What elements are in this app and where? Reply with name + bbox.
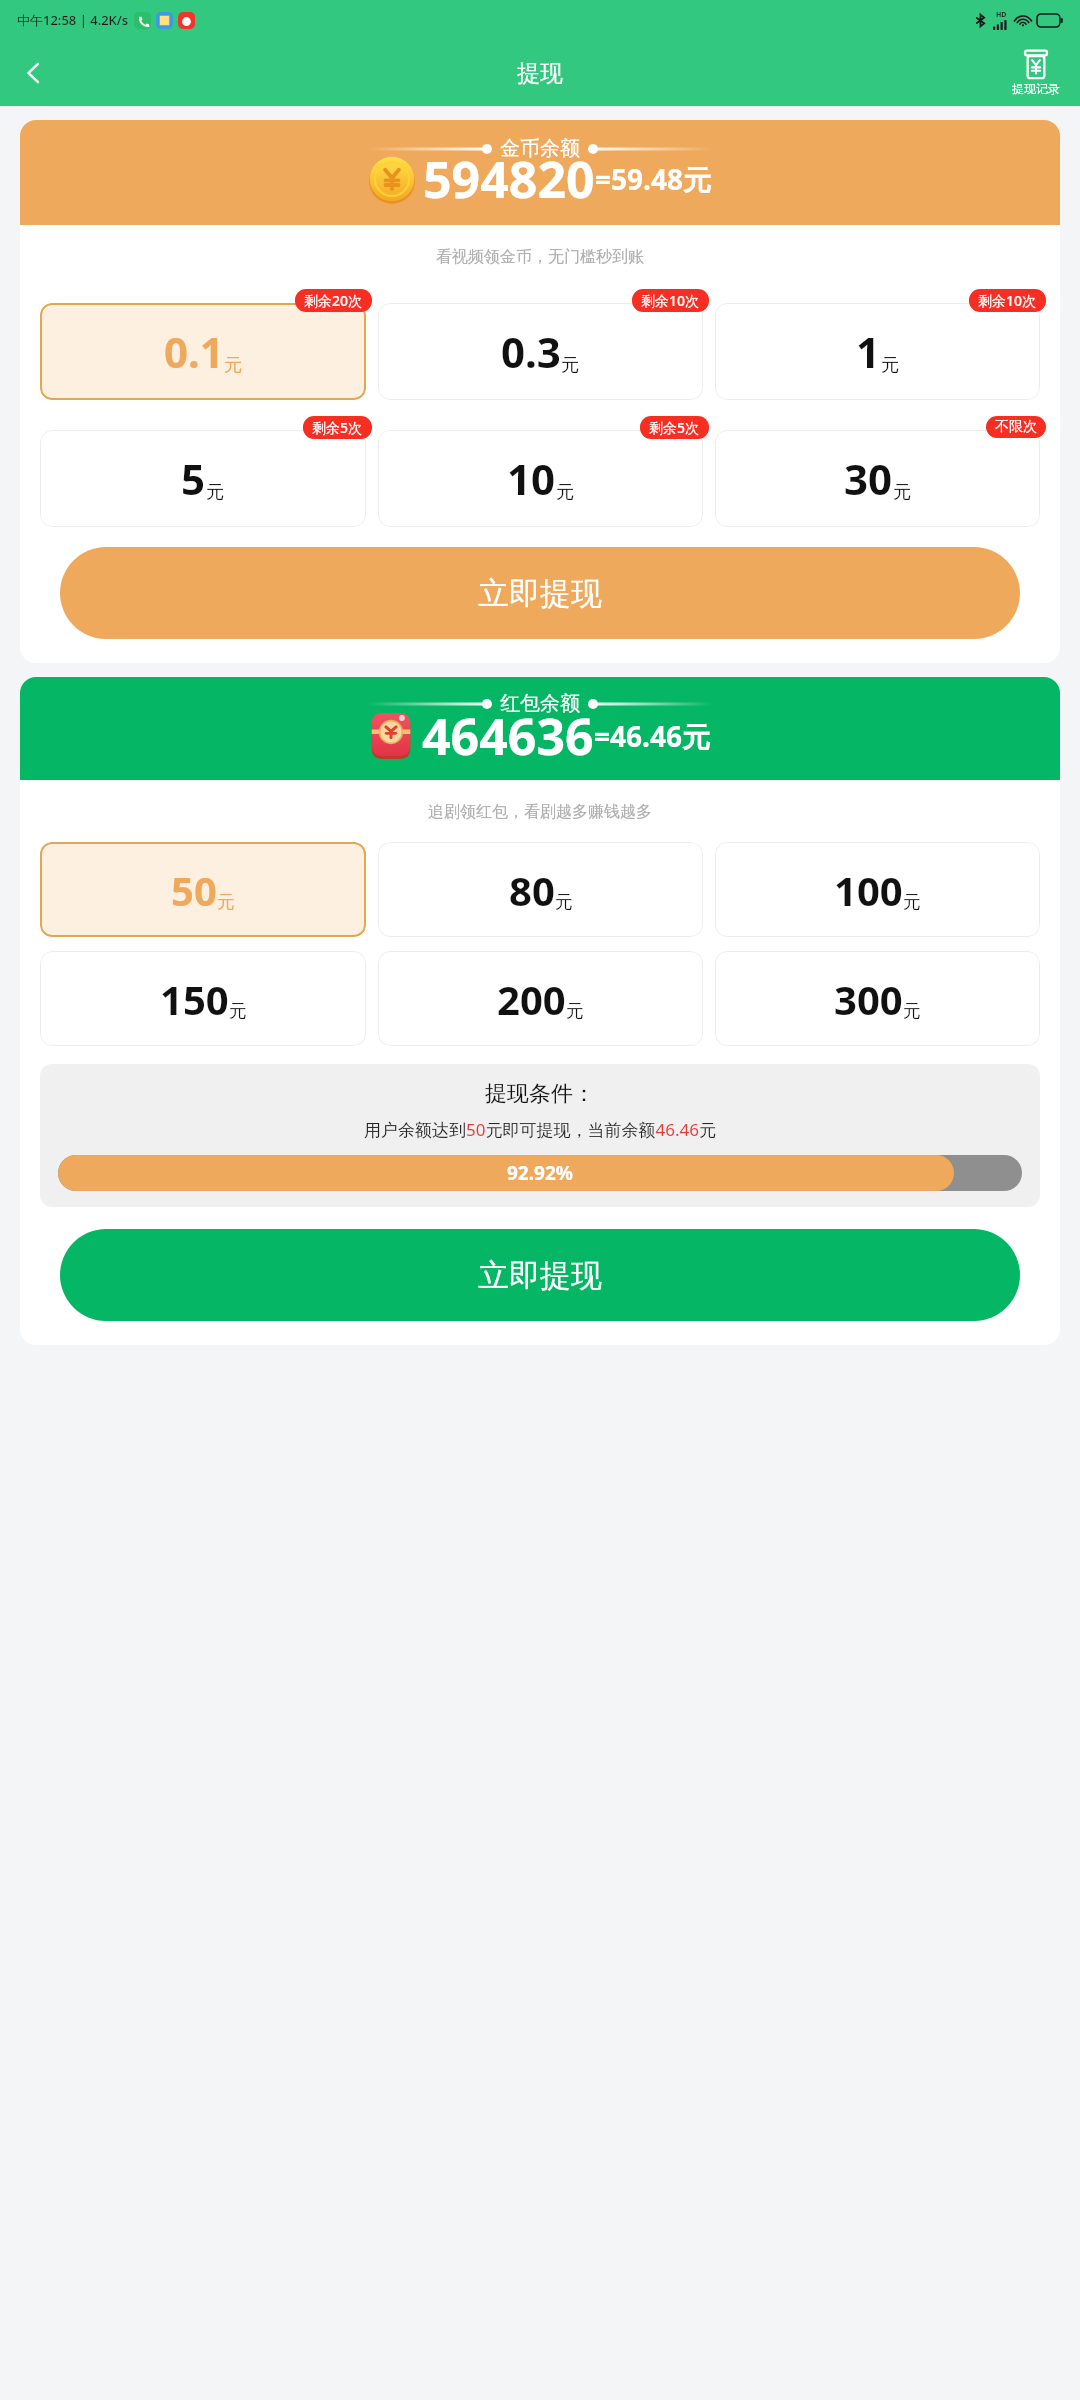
staticText: 中午12:58 | 4.2K/s	[17, 11, 129, 29]
staticText: 1	[856, 323, 881, 380]
staticText: 剩余5次	[649, 418, 700, 437]
staticText: 红包余额	[500, 691, 580, 716]
staticText: 剩余10次	[641, 291, 700, 310]
staticText: 元	[881, 353, 900, 376]
staticText: HD	[996, 10, 1007, 20]
staticText: 追剧领红包，看剧越多赚钱越多	[20, 802, 1060, 822]
staticText: 元	[903, 891, 921, 913]
staticText: 464636	[422, 702, 594, 770]
staticText: 剩余5次	[312, 418, 363, 437]
staticText: 提现	[517, 59, 563, 88]
staticText: 200	[497, 972, 566, 1026]
staticText: 用户余额达到50元即可提现，当前余额46.46元	[364, 1118, 716, 1141]
staticText: 594820	[423, 145, 595, 213]
button[interactable]: 200	[378, 951, 703, 1046]
staticText: 元	[561, 353, 580, 376]
staticText: 0.1	[164, 323, 224, 380]
staticText: 金币余额	[500, 136, 580, 161]
staticText: 100	[834, 863, 903, 917]
button[interactable]: 立即提现	[60, 1229, 1020, 1321]
staticText: =59.48元	[595, 160, 711, 198]
staticText: 50	[171, 863, 217, 917]
staticText: 立即提现	[478, 1256, 602, 1295]
staticText: 看视频领金币，无门槛秒到账	[20, 247, 1060, 267]
staticText: 元	[555, 891, 573, 913]
staticText: 元	[903, 1000, 921, 1022]
staticText: 剩余20次	[304, 291, 363, 310]
staticText: 提现条件：	[485, 1080, 595, 1108]
staticText: 0.3	[501, 323, 561, 380]
staticText: 元	[224, 353, 243, 376]
staticText: =46.46元	[594, 717, 710, 755]
staticText: 不限次	[995, 418, 1037, 436]
staticText: 300	[834, 972, 903, 1026]
button[interactable]: 10	[378, 430, 703, 527]
staticText: 30	[844, 450, 893, 507]
button[interactable]: 150	[40, 951, 366, 1046]
button[interactable]: 立即提现	[60, 547, 1020, 639]
staticText: 提现记录	[1012, 81, 1060, 96]
staticText: 元	[229, 1000, 247, 1022]
staticText: 元	[893, 480, 912, 503]
staticText: 150	[160, 972, 229, 1026]
staticText: 元	[217, 891, 235, 913]
staticText: 92.92%	[507, 1160, 573, 1186]
button[interactable]: 1	[715, 303, 1040, 400]
button[interactable]: 0.3	[378, 303, 703, 400]
staticText: 10	[507, 450, 556, 507]
button[interactable]: Back	[8, 47, 60, 99]
staticText: 立即提现	[478, 574, 602, 613]
staticText: 元	[206, 480, 225, 503]
button[interactable]: 30	[715, 430, 1040, 527]
button[interactable]: 提现记录	[1008, 50, 1064, 96]
button[interactable]: 80	[378, 842, 703, 937]
staticText: 元	[566, 1000, 584, 1022]
button[interactable]: 300	[715, 951, 1040, 1046]
staticText: 80	[509, 863, 555, 917]
button[interactable]: 0.1	[40, 303, 366, 400]
staticText: 5	[181, 450, 206, 507]
button[interactable]: 50	[40, 842, 366, 937]
button[interactable]: 100	[715, 842, 1040, 937]
staticText: 剩余10次	[978, 291, 1037, 310]
button[interactable]: 5	[40, 430, 366, 527]
staticText: 元	[556, 480, 575, 503]
